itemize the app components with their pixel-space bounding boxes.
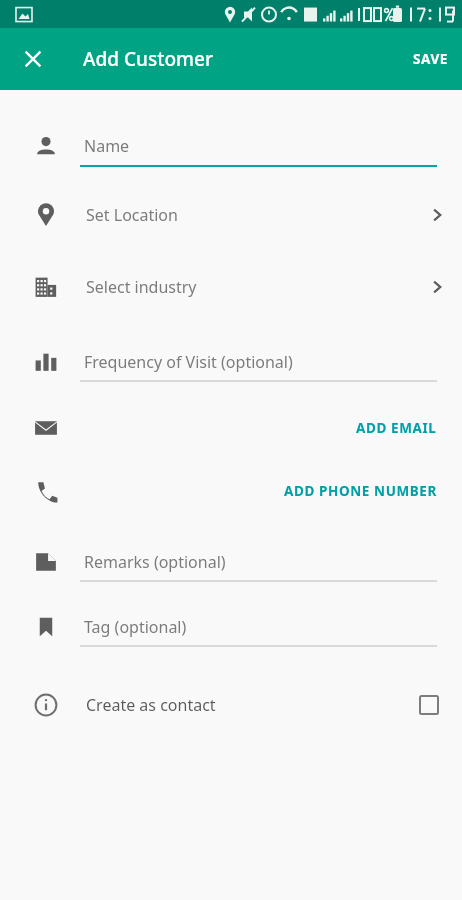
button[interactable]: Select industry	[0, 260, 462, 314]
button[interactable]: Name	[0, 120, 462, 172]
staticText: Name	[84, 135, 130, 157]
staticText: Select industry	[86, 276, 197, 298]
staticText: ADD PHONE NUMBER	[284, 482, 437, 500]
staticText: Frequency of Visit (optional)	[84, 351, 293, 373]
button[interactable]: Frequency of Visit	[0, 336, 462, 388]
button[interactable]: Tag	[0, 601, 462, 653]
button[interactable]: Create as contact checkbox	[414, 690, 444, 720]
button[interactable]: Set Location	[0, 188, 462, 242]
button[interactable]: SAVE	[399, 40, 462, 78]
button[interactable]: Create as contact	[0, 679, 462, 731]
staticText: Create as contact	[86, 694, 216, 716]
staticText: Remarks (optional)	[84, 551, 226, 573]
staticText: SAVE	[413, 50, 448, 68]
staticText: ADD EMAIL	[356, 419, 437, 437]
button[interactable]: Add email	[0, 402, 462, 454]
button[interactable]: Remarks	[0, 536, 462, 588]
staticText: Tag (optional)	[84, 616, 187, 638]
button[interactable]: Add phone number	[0, 465, 462, 517]
staticText: Set Location	[86, 204, 178, 226]
staticText: Add Customer	[83, 46, 213, 72]
button[interactable]: Close	[13, 39, 53, 79]
